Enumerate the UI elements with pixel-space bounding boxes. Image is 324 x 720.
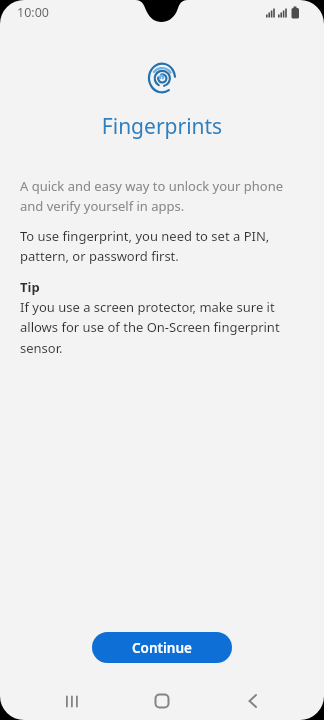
staticText: Fingerprints xyxy=(0,112,324,141)
staticText: Continue xyxy=(132,639,192,657)
staticText: Tip xyxy=(20,278,40,296)
staticText: 10:00 xyxy=(17,4,49,21)
staticText: A quick and easy way to unlock your phon… xyxy=(20,177,284,215)
staticText: To use fingerprint, you need to set a PI… xyxy=(20,227,270,265)
staticText: If you use a screen protector, make sure… xyxy=(20,298,280,357)
button[interactable]: Continue xyxy=(92,632,232,663)
button[interactable] xyxy=(55,685,89,717)
button[interactable] xyxy=(236,685,270,717)
button[interactable] xyxy=(145,685,179,717)
